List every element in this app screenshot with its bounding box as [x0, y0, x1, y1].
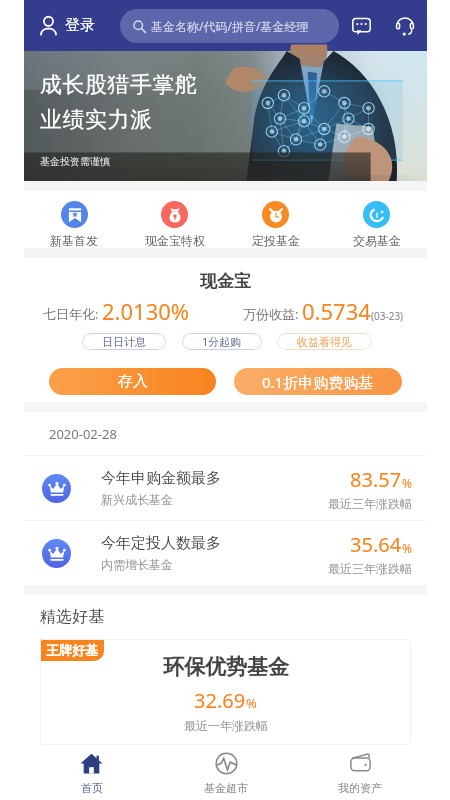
staticText: 新兴成长基金	[101, 492, 173, 507]
staticText: 收益看得见	[297, 335, 352, 349]
staticText: (03-23)	[371, 309, 404, 323]
button[interactable]: 新基首发	[24, 191, 124, 248]
button[interactable]: 今年定投人数最多	[24, 521, 427, 585]
staticText: 最近三年涨跌幅	[328, 561, 412, 576]
button[interactable]: 基金名称/代码/拼音/基金经理	[120, 9, 339, 43]
button[interactable]: 日日计息	[82, 333, 166, 350]
button[interactable]: 交易基金	[326, 191, 427, 248]
button[interactable]: 0.1折申购费购基	[234, 368, 402, 395]
staticText: 内需增长基金	[101, 557, 173, 572]
staticText: %	[402, 475, 412, 491]
button[interactable]: 我的资产	[293, 745, 427, 799]
button[interactable]: 登录	[24, 8, 99, 43]
staticText: 现金宝	[200, 271, 251, 292]
button[interactable]: 收益看得见	[277, 333, 372, 350]
staticText: 2020-02-28	[49, 425, 117, 443]
staticText: 1分起购	[202, 334, 242, 349]
button[interactable]: 定投基金	[225, 191, 326, 248]
staticText: 现金宝特权	[145, 233, 205, 248]
staticText: 0.1折申购费购基	[262, 372, 374, 392]
button[interactable]: Messages	[339, 4, 383, 48]
staticText: 精选好基	[40, 607, 104, 627]
staticText: 0.5734	[302, 296, 371, 326]
staticText: 环保优势基金	[163, 654, 289, 680]
button[interactable]: 1分起购	[182, 333, 262, 350]
staticText: 登录	[65, 16, 95, 35]
staticText: 基金投资需谨慎	[40, 155, 110, 168]
staticText: 基金超市	[204, 781, 248, 795]
staticText: 成长股猎手掌舵	[40, 71, 198, 99]
staticText: 今年定投人数最多	[101, 534, 221, 553]
staticText: 基金名称/代码/拼音/基金经理	[151, 18, 309, 34]
staticText: 2.0130%	[102, 296, 190, 326]
staticText: 32.69	[194, 687, 246, 714]
staticText: 王牌好基	[46, 642, 98, 658]
staticText: 定投基金	[252, 233, 300, 248]
button[interactable]: 基金超市	[159, 745, 293, 799]
staticText: 业绩实力派	[40, 106, 153, 134]
staticText: 今年申购金额最多	[101, 469, 221, 488]
button[interactable]: 今年申购金额最多	[24, 456, 427, 520]
staticText: 我的资产	[338, 781, 382, 795]
staticText: 83.57	[350, 466, 402, 493]
staticText: %	[246, 694, 257, 712]
staticText: 万份收益:	[243, 305, 299, 323]
staticText: 交易基金	[353, 233, 401, 248]
staticText: 最近一年涨跌幅	[184, 718, 268, 733]
button[interactable]: 现金宝特权	[124, 191, 225, 248]
button[interactable]: Customer service	[383, 4, 427, 48]
button[interactable]: 成长股猎手掌舵	[24, 51, 427, 181]
staticText: 35.64	[350, 531, 402, 558]
staticText: 存入	[118, 372, 148, 391]
staticText: 新基首发	[50, 233, 98, 248]
staticText: 日日计息	[102, 335, 146, 349]
button[interactable]: 王牌好基	[40, 639, 411, 745]
button[interactable]: 首页	[24, 745, 159, 799]
staticText: %	[402, 540, 412, 556]
button[interactable]: 存入	[49, 368, 216, 395]
staticText: 首页	[81, 781, 103, 795]
staticText: 七日年化:	[43, 305, 99, 323]
staticText: 最近三年涨跌幅	[328, 496, 412, 511]
